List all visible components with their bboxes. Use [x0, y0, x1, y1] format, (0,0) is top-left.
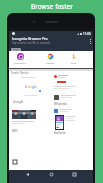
staticText: Google [13, 100, 24, 104]
staticText: Browse faster [31, 2, 73, 11]
button[interactable]: Google [42, 53, 58, 64]
staticText: Incognito Browser Pro [12, 36, 48, 41]
staticText: BBC [12, 129, 18, 133]
staticText: Tap to enter an URL or a search [12, 41, 51, 45]
button[interactable]: Back [23, 170, 32, 179]
staticText: Search Results [11, 71, 29, 75]
staticText: 11:06 [83, 32, 91, 36]
staticText: Bing [71, 61, 77, 64]
button[interactable]: More options [89, 38, 92, 45]
staticText: search [13, 48, 20, 51]
staticText: BizStore [54, 131, 66, 135]
staticText: Google [46, 61, 55, 64]
staticText: e [35, 85, 37, 89]
staticText: G [25, 85, 28, 89]
button[interactable]: Recents [70, 170, 79, 179]
button[interactable]: Home [47, 170, 56, 179]
staticText: l [34, 85, 35, 89]
staticText: o [28, 85, 30, 89]
button[interactable]: Free Basics [12, 53, 28, 64]
button[interactable]: Tabs [13, 160, 17, 164]
staticText: g [32, 85, 34, 89]
staticText: Wikipedia [54, 102, 67, 106]
staticText: o [30, 85, 32, 89]
button[interactable]: search [11, 48, 21, 51]
staticText: Free Basics [14, 61, 27, 64]
button[interactable]: Bing [66, 53, 82, 64]
